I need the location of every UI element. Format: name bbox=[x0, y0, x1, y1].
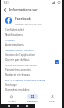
button[interactable]: Batterie et réseau bbox=[1, 72, 62, 82]
button[interactable]: Back bbox=[1, 5, 9, 14]
staticText: Autorisations bbox=[5, 43, 24, 47]
staticText: Stockage bbox=[5, 83, 17, 87]
button[interactable]: Découvrir bbox=[22, 94, 42, 103]
staticText: Env. 2 % depuis la dernière charge bbox=[5, 78, 46, 81]
button[interactable]: Notifications bbox=[1, 32, 62, 42]
button[interactable]: Profil bbox=[42, 94, 62, 103]
staticText: Données mobiles bbox=[5, 88, 30, 92]
staticText: Aucun paramètre par défaut bbox=[5, 63, 37, 66]
staticText: Notifications bbox=[5, 33, 23, 37]
other: Activé bbox=[55, 60, 59, 64]
staticText: Batterie et réseau bbox=[5, 73, 31, 77]
staticText: Découvrir bbox=[27, 100, 38, 103]
staticText: Version 452.0.0.35.109 bbox=[15, 22, 42, 25]
staticText: Appareil photo, contacts bbox=[5, 48, 34, 51]
staticText: Gestion de l'application bbox=[5, 53, 36, 57]
button[interactable]: Ouvrir par défaut bbox=[1, 57, 62, 67]
staticText: Activées bbox=[5, 38, 15, 41]
staticText: 9:41 bbox=[3, 1, 9, 5]
staticText: Profil bbox=[49, 100, 55, 103]
button[interactable]: Données mobiles bbox=[1, 87, 62, 93]
staticText: Informations sur l'application bbox=[9, 7, 59, 12]
staticText: Accueil bbox=[8, 100, 16, 103]
button[interactable]: Autorisations bbox=[1, 42, 62, 52]
staticText: Paramètres avancés bbox=[5, 68, 31, 72]
staticText: Ouvrir par défaut bbox=[5, 58, 30, 62]
button[interactable]: Facebook bbox=[1, 14, 62, 26]
staticText: Facebook bbox=[15, 16, 31, 21]
staticText: Confidentialité bbox=[5, 28, 24, 32]
button[interactable]: Accueil bbox=[1, 94, 22, 103]
